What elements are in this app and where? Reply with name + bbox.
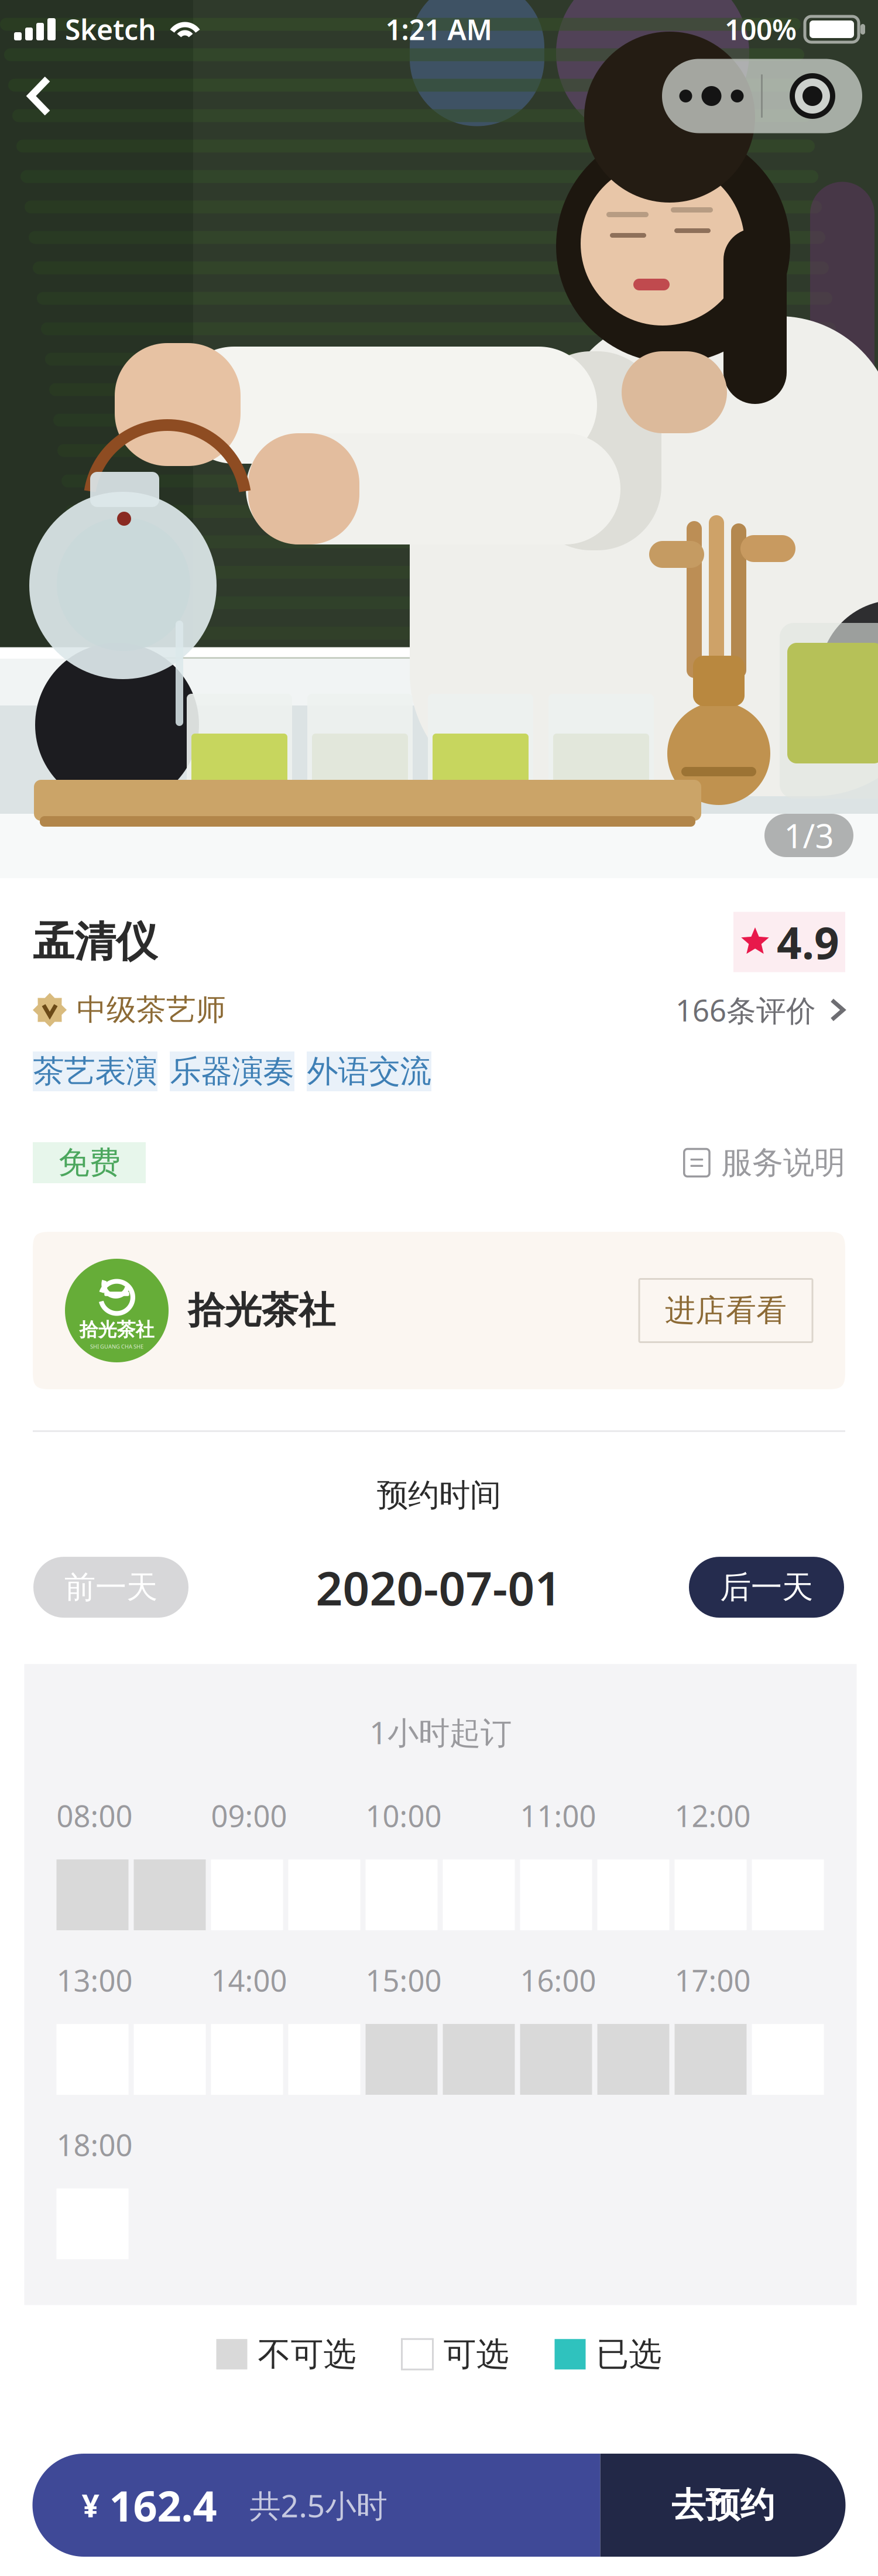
staticText: SHI GUANG CHA SHE: [90, 1343, 143, 1350]
staticText: 13:00: [56, 1960, 133, 2000]
button[interactable]: Close mini program: [763, 59, 862, 133]
button[interactable]: 后一天: [689, 1557, 844, 1618]
staticText: 孟清仪: [33, 917, 157, 967]
staticText: 可选: [443, 2334, 509, 2374]
staticText: ¥: [82, 2484, 100, 2526]
staticText: 去预约: [671, 2484, 775, 2526]
staticText: 11:00: [520, 1796, 596, 1835]
staticText: 15:00: [366, 1960, 442, 2000]
staticText: 4.9: [777, 913, 839, 971]
staticText: 17:00: [675, 1960, 751, 2000]
staticText: 中级茶艺师: [77, 992, 226, 1028]
staticText: 拾光茶社: [188, 1288, 335, 1333]
staticText: 12:00: [675, 1796, 751, 1835]
staticText: 09:00: [211, 1796, 287, 1835]
staticText: 进店看看: [665, 1292, 787, 1329]
staticText: 不可选: [258, 2334, 356, 2374]
button[interactable]: 服务说明: [684, 1142, 845, 1183]
staticText: 10:00: [366, 1796, 442, 1835]
staticText: 前一天: [64, 1568, 157, 1606]
button[interactable]: ¥: [32, 2454, 600, 2557]
staticText: 1/3: [784, 814, 834, 857]
button[interactable]: 去预约: [600, 2454, 846, 2557]
staticText: 166条评价: [675, 990, 816, 1030]
staticText: 免费: [58, 1144, 120, 1182]
staticText: 1小时起订: [369, 1711, 512, 1753]
staticText: 14:00: [211, 1960, 287, 2000]
staticText: 预约时间: [377, 1476, 501, 1514]
staticText: 100%: [725, 11, 797, 48]
staticText: 乐器演奏: [170, 1052, 294, 1091]
staticText: 外语交流: [307, 1052, 431, 1091]
staticText: 拾光茶社: [79, 1318, 154, 1341]
staticText: Sketch: [65, 11, 156, 48]
staticText: 162.4: [109, 2477, 217, 2533]
staticText: 后一天: [720, 1568, 813, 1606]
button[interactable]: 前一天: [33, 1557, 188, 1618]
staticText: 服务说明: [721, 1144, 845, 1182]
button[interactable]: 166条评价: [675, 992, 845, 1028]
staticText: 1:21 AM: [385, 11, 493, 48]
staticText: 茶艺表演: [33, 1052, 157, 1091]
staticText: 18:00: [56, 2125, 133, 2164]
button[interactable]: Back: [0, 59, 78, 133]
staticText: 已选: [596, 2334, 662, 2374]
staticText: 16:00: [520, 1960, 596, 2000]
staticText: 08:00: [56, 1796, 133, 1835]
button[interactable]: 进店看看: [639, 1279, 812, 1342]
staticText: 共2.5小时: [250, 2484, 387, 2526]
button[interactable]: More: [662, 59, 761, 133]
staticText: 2020-07-01: [316, 1556, 562, 1618]
